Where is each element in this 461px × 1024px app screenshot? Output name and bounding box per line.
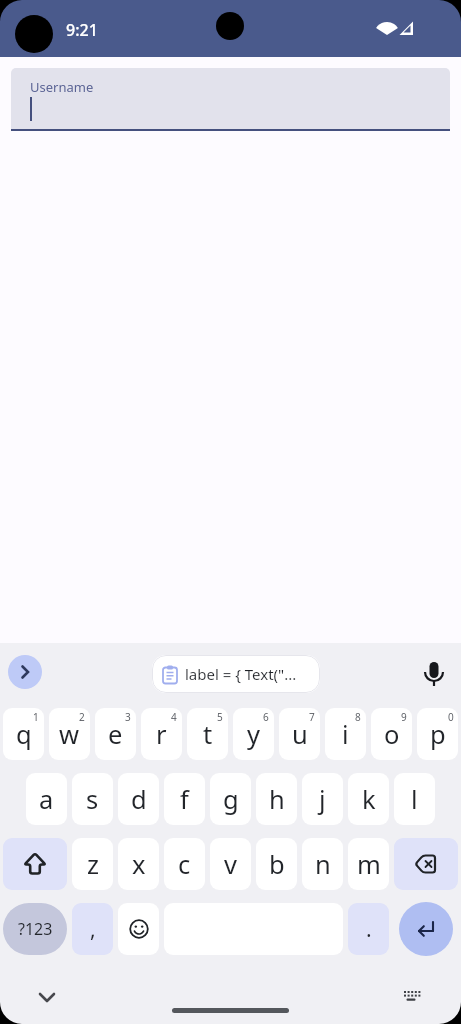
button[interactable]: h: [256, 773, 297, 825]
button[interactable]: t: [187, 708, 228, 760]
button[interactable]: [399, 902, 453, 956]
staticText: b: [269, 847, 285, 882]
button[interactable]: .: [348, 903, 389, 955]
staticText: 0: [448, 710, 454, 724]
button[interactable]: b: [256, 838, 297, 890]
button[interactable]: [118, 903, 159, 955]
staticText: v: [224, 847, 237, 882]
staticText: .: [366, 915, 372, 944]
button[interactable]: f: [164, 773, 205, 825]
staticText: e: [108, 717, 123, 752]
button[interactable]: [394, 838, 458, 890]
staticText: label = { Text("...: [185, 664, 297, 684]
staticText: k: [362, 782, 376, 817]
staticText: s: [86, 782, 99, 817]
button[interactable]: label = { Text("...: [152, 655, 320, 693]
button[interactable]: c: [164, 838, 205, 890]
button[interactable]: j: [302, 773, 343, 825]
staticText: f: [180, 782, 189, 817]
staticText: w: [59, 717, 80, 752]
staticText: p: [430, 717, 446, 752]
staticText: 1: [33, 710, 39, 724]
staticText: n: [315, 847, 331, 882]
staticText: j: [319, 782, 326, 817]
button[interactable]: k: [348, 773, 389, 825]
staticText: d: [131, 782, 147, 817]
button[interactable]: ,: [72, 903, 113, 955]
button[interactable]: v: [210, 838, 251, 890]
staticText: x: [132, 847, 146, 882]
staticText: 8: [355, 710, 361, 724]
button[interactable]: [3, 838, 67, 890]
staticText: ?123: [18, 918, 53, 940]
staticText: 3: [125, 710, 131, 724]
staticText: h: [269, 782, 285, 817]
staticText: 9:21: [66, 19, 98, 41]
staticText: 9: [401, 710, 407, 724]
button[interactable]: w: [49, 708, 90, 760]
staticText: z: [87, 847, 99, 882]
button[interactable]: g: [210, 773, 251, 825]
staticText: a: [39, 782, 54, 817]
staticText: r: [156, 717, 167, 752]
button[interactable]: p: [417, 708, 458, 760]
staticText: u: [292, 717, 308, 752]
button[interactable]: e: [95, 708, 136, 760]
button[interactable]: o: [371, 708, 412, 760]
button[interactable]: m: [348, 838, 389, 890]
button[interactable]: Username: [11, 68, 450, 131]
staticText: t: [203, 717, 213, 752]
staticText: 6: [263, 710, 269, 724]
staticText: l: [411, 782, 418, 817]
button[interactable]: d: [118, 773, 159, 825]
button[interactable]: l: [394, 773, 435, 825]
button[interactable]: [8, 655, 42, 689]
staticText: Username: [30, 78, 94, 96]
staticText: ,: [90, 915, 96, 944]
button[interactable]: q: [3, 708, 44, 760]
button[interactable]: x: [118, 838, 159, 890]
button[interactable]: s: [72, 773, 113, 825]
staticText: y: [247, 717, 261, 752]
button[interactable]: y: [233, 708, 274, 760]
staticText: 4: [171, 710, 177, 724]
button[interactable]: ?123: [3, 903, 67, 955]
button[interactable]: u: [279, 708, 320, 760]
staticText: 7: [309, 710, 315, 724]
staticText: 2: [79, 710, 85, 724]
button[interactable]: z: [72, 838, 113, 890]
staticText: q: [16, 717, 32, 752]
staticText: c: [178, 847, 191, 882]
button[interactable]: r: [141, 708, 182, 760]
button[interactable]: a: [26, 773, 67, 825]
staticText: i: [342, 717, 349, 752]
button[interactable]: n: [302, 838, 343, 890]
button[interactable]: i: [325, 708, 366, 760]
staticText: g: [223, 782, 239, 817]
staticText: o: [384, 717, 400, 752]
staticText: 5: [217, 710, 223, 724]
staticText: m: [357, 847, 381, 882]
